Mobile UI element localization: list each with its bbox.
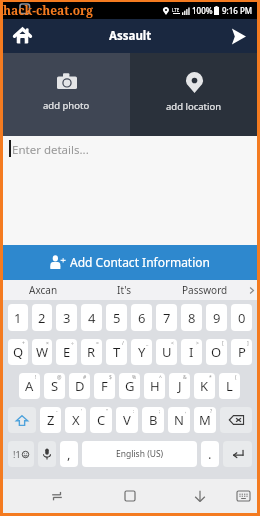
button[interactable]: 3 [56, 304, 77, 331]
staticText: L [226, 377, 233, 395]
staticText: Axcan [29, 283, 58, 297]
staticText: ( [235, 374, 237, 381]
button[interactable]: More suggestions [245, 280, 257, 300]
staticText: 0 [238, 309, 246, 327]
button[interactable]: , [60, 441, 78, 467]
staticText: Assault [109, 28, 152, 44]
staticText: > [196, 340, 199, 347]
staticText: 9:16 PM [222, 5, 253, 16]
button[interactable]: 9 [206, 304, 227, 331]
staticText: Enter details... [12, 142, 89, 158]
button[interactable]: Z [40, 407, 61, 433]
button[interactable]: H [144, 373, 165, 399]
button[interactable]: Hide keyboard [184, 482, 216, 510]
button[interactable]: P [231, 339, 252, 365]
button[interactable]: Password [164, 280, 245, 300]
staticText: P [238, 343, 246, 361]
button[interactable]: 7 [156, 304, 177, 331]
staticText: U [162, 343, 172, 361]
staticText: ! [35, 374, 37, 381]
staticText: ; [159, 408, 161, 415]
button[interactable]: Home [114, 482, 146, 510]
staticText: Password [182, 283, 228, 297]
button[interactable]: Shift [8, 407, 36, 433]
staticText: LTE [172, 7, 180, 13]
button[interactable]: Symbols [8, 441, 34, 467]
button[interactable]: J [169, 373, 190, 399]
staticText: _ [146, 340, 149, 347]
button[interactable]: X [65, 407, 86, 433]
staticText: !1 [13, 448, 21, 460]
button[interactable]: D [69, 373, 90, 399]
button[interactable]: 4 [81, 304, 102, 331]
button[interactable]: . [201, 441, 219, 467]
staticText: Y [138, 343, 146, 361]
staticText: 9 [213, 309, 221, 327]
button[interactable]: B [142, 407, 164, 433]
staticText: F [101, 377, 108, 395]
button[interactable]: G [119, 373, 140, 399]
button[interactable]: A [19, 373, 40, 399]
button[interactable]: It's [83, 280, 164, 300]
button[interactable]: 6 [131, 304, 152, 331]
button[interactable]: add location [130, 53, 257, 136]
staticText: Z [47, 411, 55, 429]
staticText: T [113, 343, 121, 361]
staticText: 4 [88, 309, 96, 327]
button[interactable]: add photo [3, 53, 130, 136]
staticText: 5 [113, 309, 121, 327]
button[interactable]: Home [3, 19, 41, 53]
staticText: add location [166, 100, 222, 113]
button[interactable]: Enter [223, 441, 252, 467]
button[interactable]: F [94, 373, 115, 399]
button[interactable]: O [206, 339, 227, 365]
button[interactable]: W [32, 339, 52, 365]
staticText: @ [57, 374, 62, 381]
staticText: I [189, 343, 194, 361]
staticText: : [133, 408, 135, 415]
button[interactable]: R [81, 339, 102, 365]
staticText: hack-cheat.org [3, 2, 94, 18]
staticText: N [174, 411, 184, 429]
staticText: 3 [63, 309, 71, 327]
button[interactable]: English (US) [82, 441, 197, 467]
button[interactable]: Send [219, 19, 257, 53]
staticText: 8 [188, 309, 196, 327]
button[interactable]: E [56, 339, 77, 365]
button[interactable]: M [194, 407, 216, 433]
staticText: [ [222, 340, 224, 347]
staticText: . [208, 445, 212, 463]
staticText: ] [247, 340, 249, 347]
button[interactable]: K [194, 373, 215, 399]
button[interactable]: Axcan [3, 280, 83, 300]
button[interactable]: T [106, 339, 127, 365]
button[interactable]: Backspace [220, 407, 252, 433]
button[interactable]: 2 [32, 304, 52, 331]
button[interactable]: Y [131, 339, 152, 365]
button[interactable]: 5 [106, 304, 127, 331]
staticText: Add Contact Information [70, 254, 210, 270]
button[interactable]: Q [8, 339, 28, 365]
staticText: + [22, 340, 25, 347]
button[interactable]: Recents [41, 482, 73, 510]
button[interactable]: U [156, 339, 177, 365]
staticText: 2 [38, 309, 46, 327]
staticText: D [75, 377, 85, 395]
button[interactable]: I [181, 339, 202, 365]
staticText: × [46, 340, 49, 347]
button[interactable]: Choose keyboard [227, 482, 259, 510]
button[interactable]: V [116, 407, 138, 433]
button[interactable]: 8 [181, 304, 202, 331]
button[interactable]: S [44, 373, 65, 399]
button[interactable]: 1 [8, 304, 28, 331]
button[interactable]: C [90, 407, 112, 433]
staticText: & [183, 374, 187, 381]
button[interactable]: 0 [231, 304, 252, 331]
button[interactable]: Add Contact Information [3, 245, 257, 278]
staticText: H [150, 377, 160, 395]
button[interactable]: L [219, 373, 240, 399]
button[interactable]: N [168, 407, 190, 433]
button[interactable]: Voice input [38, 441, 56, 467]
staticText: ÷ [71, 340, 74, 347]
staticText: ' [81, 408, 83, 415]
